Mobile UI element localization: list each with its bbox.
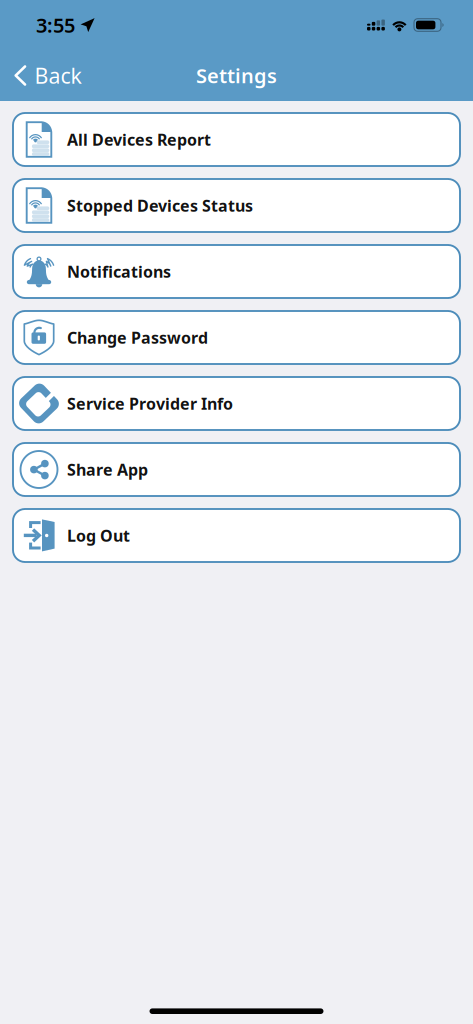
button[interactable]: Change Password [13,311,460,364]
staticText: Back [34,61,81,90]
button[interactable]: Back [0,53,93,97]
button[interactable]: Share App [13,443,460,496]
staticText: Settings [196,62,277,89]
button[interactable]: All Devices Report [13,113,460,166]
staticText: Notifications [67,261,171,282]
staticText: Share App [67,459,148,480]
staticText: Stopped Devices Status [67,195,253,216]
staticText: All Devices Report [67,129,211,150]
staticText: Change Password [67,327,208,348]
button[interactable]: Notifications [13,245,460,298]
staticText: 3:55 [36,12,75,38]
button[interactable]: Stopped Devices Status [13,179,460,232]
staticText: Log Out [67,525,130,546]
button[interactable]: Service Provider Info [13,377,460,430]
staticText: Service Provider Info [67,393,233,414]
button[interactable]: Log Out [13,509,460,562]
